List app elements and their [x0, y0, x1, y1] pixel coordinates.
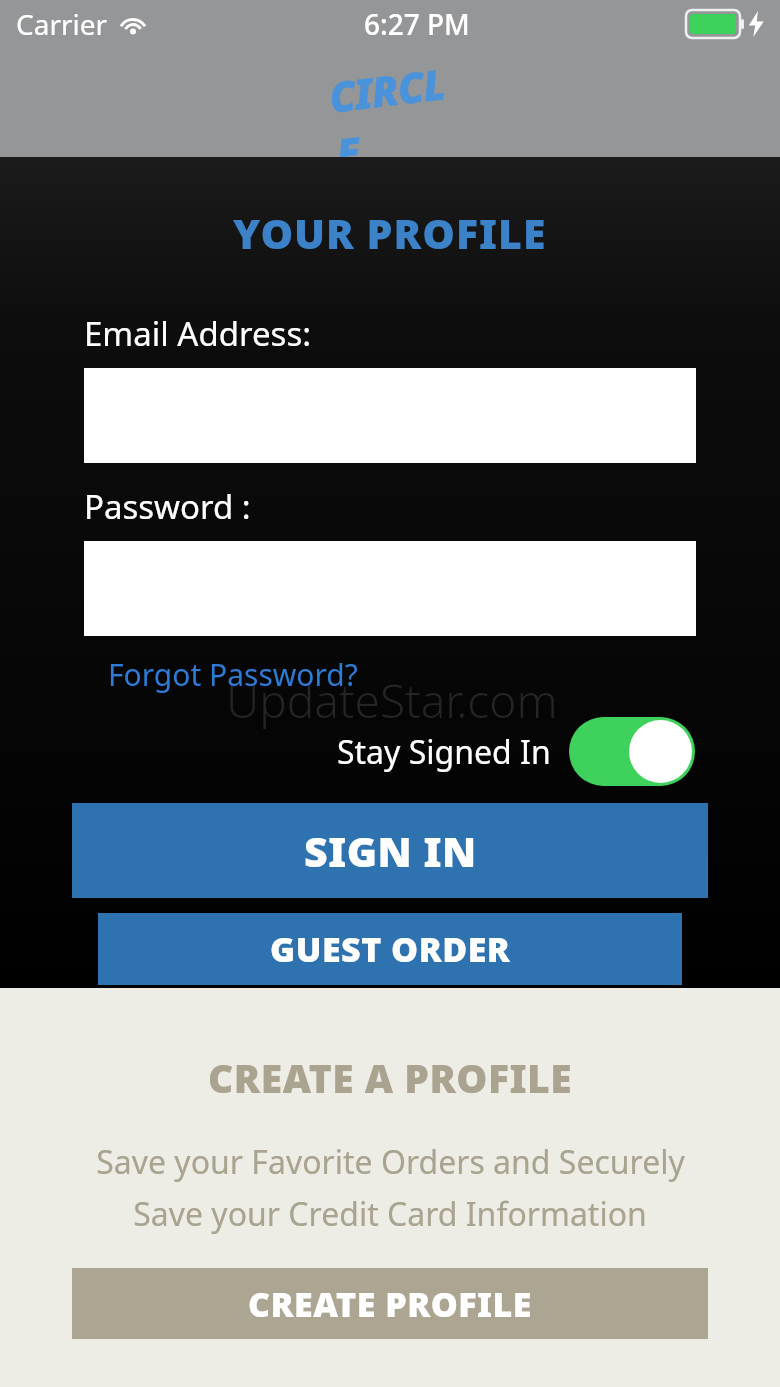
button[interactable]: GUEST ORDER	[98, 913, 682, 985]
staticText: CIRCLE	[326, 54, 454, 160]
staticText: Save your Favorite Orders and Securely	[96, 1140, 685, 1184]
staticText: 6:27 PM	[364, 5, 470, 43]
staticText: Email Address:	[84, 311, 312, 356]
button[interactable]: Forgot Password?	[108, 654, 358, 695]
staticText: CREATE A PROFILE	[208, 1051, 573, 1104]
button[interactable]: SIGN IN	[72, 803, 708, 898]
staticText: Stay Signed In	[337, 730, 551, 774]
staticText: Forgot Password?	[108, 654, 358, 695]
staticText: CREATE PROFILE	[248, 1281, 532, 1327]
staticText: Save your Credit Card Information	[133, 1192, 647, 1236]
staticText: YOUR PROFILE	[233, 205, 547, 261]
other: Wi-Fi	[118, 13, 148, 35]
other: Battery charging	[686, 10, 744, 38]
staticText: Carrier	[16, 5, 108, 43]
staticText: Password :	[84, 484, 251, 529]
button[interactable]: Stay Signed In toggle, on	[569, 717, 695, 786]
button[interactable]: CREATE PROFILE	[72, 1268, 708, 1339]
staticText: GUEST ORDER	[270, 926, 511, 972]
staticText: UpdateStar.com	[226, 669, 558, 732]
staticText: SIGN IN	[304, 823, 477, 879]
